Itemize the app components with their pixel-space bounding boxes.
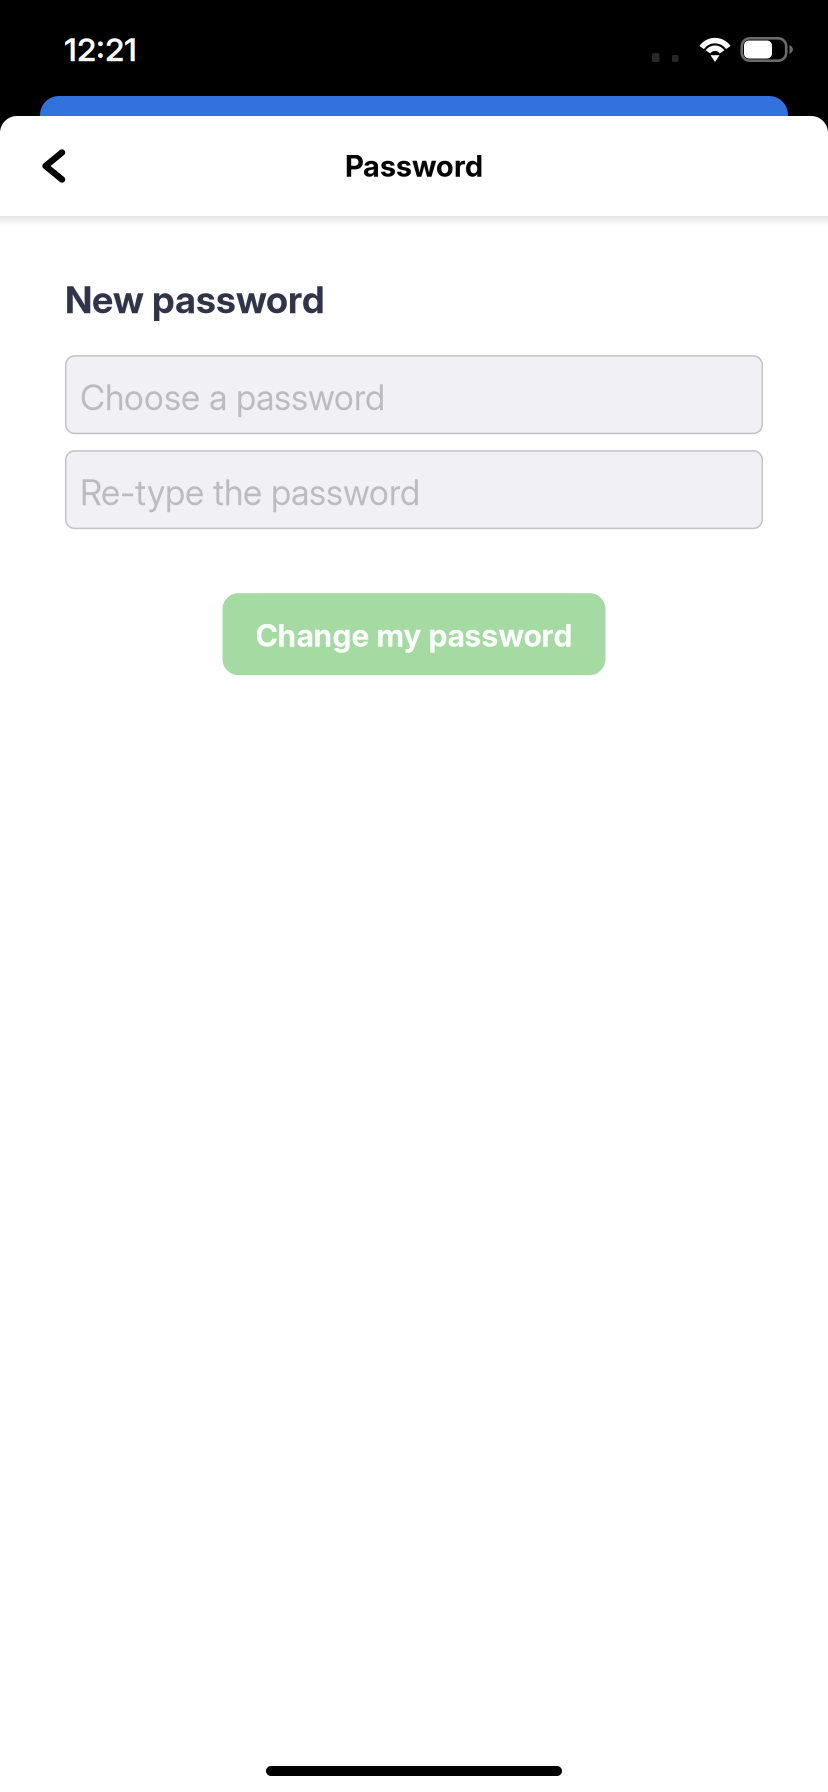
staticText: Choose a password [80, 377, 385, 419]
staticText: New password [65, 277, 325, 322]
staticText: Password [345, 148, 483, 184]
staticText: 12:21 [64, 30, 137, 69]
staticText: Change my password [255, 617, 572, 654]
staticText: Re-type the password [80, 472, 420, 514]
button[interactable]: Back [10, 116, 98, 216]
button[interactable]: Change my password [222, 593, 605, 675]
